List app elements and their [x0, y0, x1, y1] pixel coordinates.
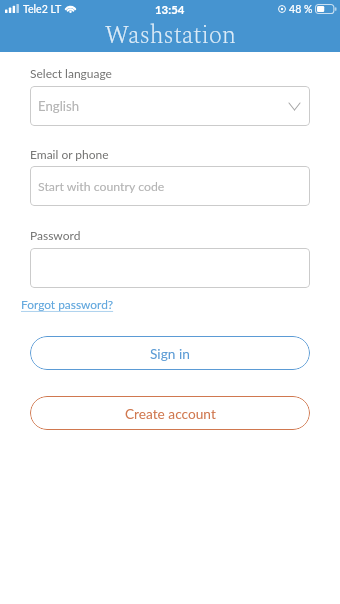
button[interactable]: Sign in	[30, 336, 310, 370]
button[interactable]	[30, 248, 310, 288]
staticText: Start with country code	[38, 179, 165, 194]
staticText: Washstation	[105, 17, 236, 55]
button[interactable]: English	[30, 86, 310, 126]
staticText: Email or phone	[30, 147, 109, 161]
staticText: 13:54	[155, 3, 185, 17]
staticText: Forgot password?	[21, 297, 114, 311]
staticText: 48 %	[289, 3, 313, 16]
button[interactable]: Start with country code	[30, 166, 310, 206]
staticText: Tele2 LT	[23, 3, 62, 16]
button[interactable]: Forgot password?	[20, 297, 115, 311]
button[interactable]: Create account	[30, 396, 310, 430]
staticText: Password	[30, 228, 81, 242]
staticText: English	[38, 98, 79, 114]
staticText: Sign in	[150, 345, 190, 361]
staticText: Create account	[125, 405, 216, 421]
staticText: Select language	[30, 66, 112, 80]
